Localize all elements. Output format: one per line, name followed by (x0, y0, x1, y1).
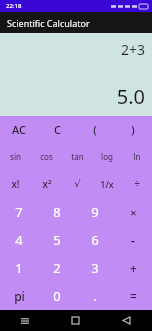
staticText: 8 (53, 203, 61, 221)
button[interactable]: = (114, 282, 152, 310)
staticText: ) (131, 122, 135, 137)
button[interactable]: - (114, 226, 152, 254)
staticText: 2+3 (120, 40, 145, 59)
staticText: 3 (91, 259, 99, 277)
button[interactable]: 3 (76, 254, 114, 282)
staticText: cos (40, 151, 53, 162)
staticText: ( (93, 122, 97, 137)
staticText: x² (42, 177, 52, 191)
staticText: √ (74, 178, 81, 190)
button[interactable]: 7 (0, 198, 38, 226)
button[interactable]: + (114, 254, 152, 282)
staticText: × (130, 205, 137, 220)
staticText: 1 (15, 259, 23, 277)
button[interactable]: 2 (38, 254, 76, 282)
button[interactable]: . (76, 282, 114, 310)
staticText: tan (71, 151, 84, 162)
staticText: 7 (15, 203, 23, 221)
button[interactable]: Back (101, 310, 152, 331)
staticText: log (101, 151, 113, 162)
staticText: 9 (91, 203, 99, 221)
staticText: 6 (91, 231, 99, 249)
staticText: 0 (53, 287, 61, 305)
button[interactable]: x! (0, 170, 31, 198)
button[interactable]: 9 (76, 198, 114, 226)
staticText: 22:18 (6, 2, 22, 10)
staticText: sin (10, 151, 21, 162)
staticText: 4 (15, 231, 23, 249)
button[interactable]: x² (31, 170, 62, 198)
button[interactable]: ÷ (122, 170, 152, 198)
staticText: . (93, 287, 97, 305)
staticText: ln (133, 151, 141, 162)
staticText: 5 (53, 231, 61, 249)
button[interactable]: × (114, 198, 152, 226)
staticText: 5.0 (116, 83, 145, 110)
staticText: 1/x (100, 178, 114, 190)
staticText: Scientific Calculator (7, 17, 90, 29)
staticText: = (130, 288, 137, 304)
button[interactable]: 4 (0, 226, 38, 254)
button[interactable]: √ (62, 170, 92, 198)
staticText: ÷ (134, 177, 140, 191)
staticText: AC (12, 122, 26, 137)
button[interactable]: cos (31, 143, 62, 170)
button[interactable]: Recent apps (0, 310, 50, 331)
button[interactable]: 8 (38, 198, 76, 226)
staticText: + (130, 260, 137, 276)
button[interactable]: 1/x (92, 170, 122, 198)
button[interactable]: Home (50, 310, 101, 331)
button[interactable]: ( (76, 116, 114, 143)
button[interactable]: 6 (76, 226, 114, 254)
staticText: C (54, 122, 61, 137)
staticText: 2 (53, 259, 61, 277)
button[interactable]: 5 (38, 226, 76, 254)
button[interactable]: log (92, 143, 122, 170)
staticText: x! (11, 177, 20, 191)
button[interactable]: ) (114, 116, 152, 143)
button[interactable]: 0 (38, 282, 76, 310)
button[interactable]: pi (0, 282, 38, 310)
button[interactable]: 1 (0, 254, 38, 282)
button[interactable]: C (38, 116, 76, 143)
button[interactable]: sin (0, 143, 31, 170)
staticText: - (131, 232, 135, 248)
button[interactable]: tan (62, 143, 92, 170)
button[interactable]: AC (0, 116, 38, 143)
button[interactable]: ln (122, 143, 152, 170)
staticText: pi (14, 288, 25, 304)
